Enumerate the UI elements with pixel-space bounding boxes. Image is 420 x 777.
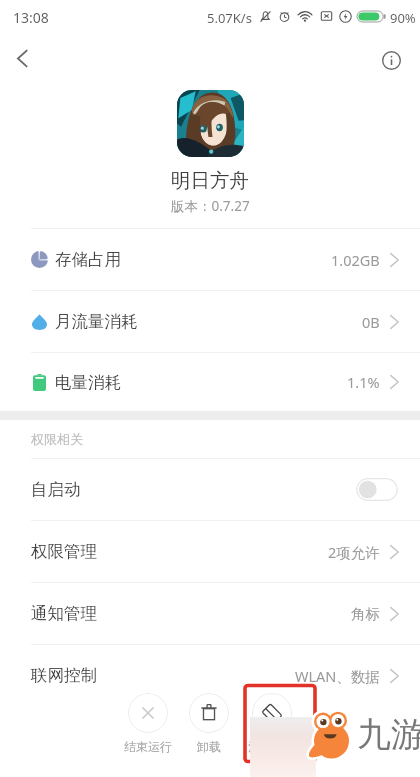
button[interactable]: 电量消耗 xyxy=(0,353,420,411)
staticText: 权限相关 xyxy=(31,431,83,447)
staticText: 自启动 xyxy=(31,479,81,500)
button[interactable]: 自启动 xyxy=(0,459,420,520)
staticText: 结束运行 xyxy=(124,739,172,754)
button[interactable]: 通知管理 xyxy=(0,583,420,644)
staticText: 九游 xyxy=(357,713,420,756)
staticText: WLAN、数据 xyxy=(295,666,380,686)
button[interactable]: Back xyxy=(2,36,42,76)
staticText: 卸载 xyxy=(197,739,221,754)
button[interactable]: 结束运行 xyxy=(117,693,179,754)
staticText: 角标 xyxy=(351,605,380,623)
staticText: 清除数据 xyxy=(248,739,296,754)
button[interactable]: 联网控制 xyxy=(0,645,420,706)
staticText: 存储占用 xyxy=(55,249,121,270)
staticText: 明日方舟 xyxy=(171,168,249,193)
button[interactable]: 权限管理 xyxy=(0,521,420,582)
staticText: 0B xyxy=(362,312,380,332)
staticText: 电量消耗 xyxy=(55,372,121,393)
staticText: 1.02GB xyxy=(331,250,380,270)
staticText: 2项允许 xyxy=(328,542,380,562)
staticText: 联网控制 xyxy=(31,665,97,686)
staticText: 1.1% xyxy=(347,372,380,392)
button[interactable]: 存储占用 xyxy=(0,229,420,290)
staticText: 月流量消耗 xyxy=(55,311,138,332)
button[interactable]: App info xyxy=(371,38,411,78)
button[interactable]: 卸载 xyxy=(178,693,240,754)
staticText: 5.07K/s xyxy=(207,9,252,27)
button[interactable]: 清除数据 xyxy=(241,693,303,754)
staticText: 13:08 xyxy=(13,8,49,27)
button[interactable]: 月流量消耗 xyxy=(0,291,420,352)
staticText: 版本：0.7.27 xyxy=(171,197,250,215)
staticText: 90% xyxy=(390,9,416,27)
staticText: 通知管理 xyxy=(31,603,97,624)
staticText: 权限管理 xyxy=(31,541,97,562)
